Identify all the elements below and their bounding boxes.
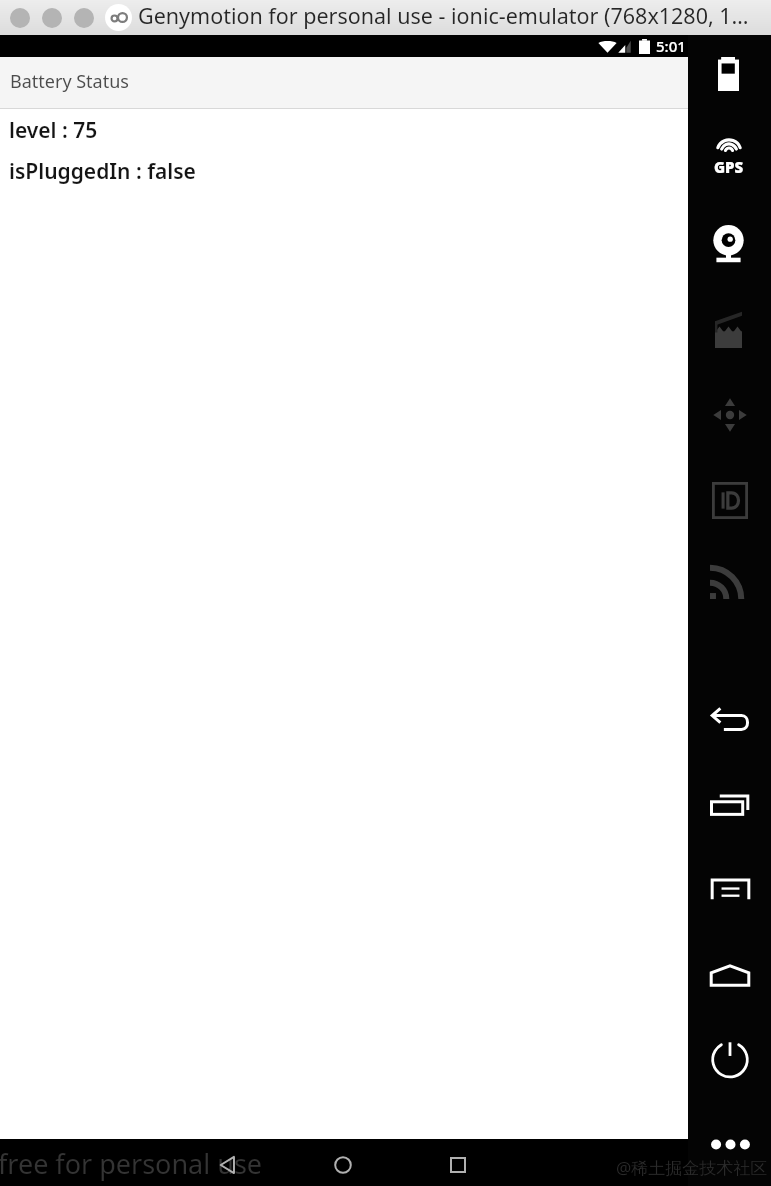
staticText: 5:01: [656, 36, 686, 56]
staticText: level : 75: [9, 116, 98, 145]
button[interactable]: Battery Status: [0, 57, 688, 108]
button[interactable]: Genymotion: [105, 4, 132, 31]
button[interactable]: Zoom window: [74, 8, 94, 28]
staticText: GPS: [714, 157, 744, 177]
staticText: Battery Status: [10, 69, 129, 94]
button[interactable]: Screen recording: [704, 306, 752, 352]
button[interactable]: Back: [201, 1141, 253, 1186]
staticText: @稀土掘金技术社区: [616, 1156, 768, 1179]
button[interactable]: Battery: [704, 51, 752, 97]
staticText: isPluggedIn : false: [9, 157, 196, 186]
button[interactable]: Rotate screen: [705, 781, 753, 827]
button[interactable]: Network: [703, 559, 751, 605]
button[interactable]: Identifiers: [706, 477, 754, 523]
staticText: free for personal use: [0, 1145, 263, 1182]
button[interactable]: Navigation pad: [706, 392, 754, 438]
staticText: Genymotion for personal use - ionic-emul…: [138, 1, 749, 30]
button[interactable]: GPS: [705, 135, 753, 181]
button[interactable]: Home: [317, 1141, 369, 1186]
button[interactable]: Minimize window: [42, 8, 62, 28]
button[interactable]: Keyboard: [706, 866, 754, 912]
button[interactable]: Home: [706, 952, 754, 998]
button[interactable]: Power: [706, 1034, 754, 1080]
button[interactable]: Camera: [704, 221, 752, 267]
button[interactable]: Close window: [10, 8, 30, 28]
button[interactable]: More options: [706, 1121, 754, 1167]
button[interactable]: Back: [706, 696, 754, 742]
button[interactable]: Recent apps: [432, 1141, 484, 1186]
